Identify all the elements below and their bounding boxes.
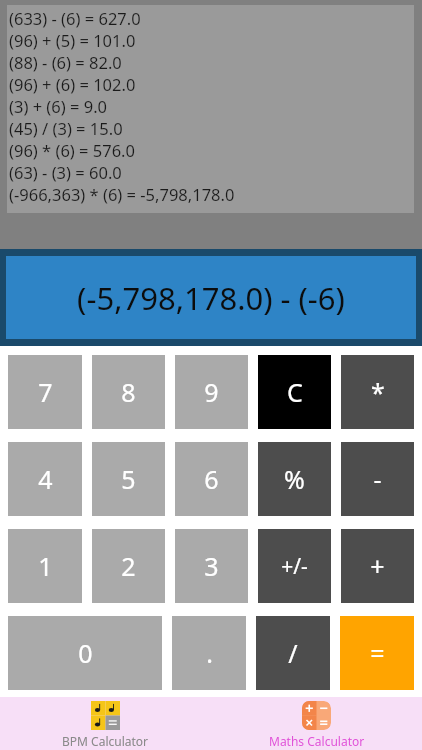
staticText: 6 <box>204 462 219 496</box>
staticText: (-5,798,178.0) - (-6) <box>77 277 345 319</box>
staticText: Maths Calculator <box>269 733 365 749</box>
staticText: 3 <box>204 549 219 583</box>
staticText: 2 <box>121 549 136 583</box>
button[interactable]: 8 <box>92 355 165 429</box>
staticText: = <box>370 636 385 670</box>
staticText: 5 <box>121 462 136 496</box>
staticText: 8 <box>121 375 136 409</box>
button[interactable]: - <box>341 442 414 516</box>
staticText: (96) + (5) = 101.0 <box>9 29 136 51</box>
button[interactable]: 2 <box>92 529 165 603</box>
staticText: (63) - (3) = 60.0 <box>9 161 122 183</box>
button[interactable]: 3 <box>175 529 248 603</box>
staticText: - <box>373 462 382 496</box>
staticText: (88) - (6) = 82.0 <box>9 51 122 73</box>
staticText: + <box>370 549 385 583</box>
button[interactable]: . <box>172 616 246 690</box>
staticText: % <box>284 462 305 496</box>
staticText: * <box>371 375 385 409</box>
button[interactable]: / <box>256 616 330 690</box>
staticText: (-966,363) * (6) = -5,798,178.0 <box>9 183 235 205</box>
staticText: (45) / (3) = 15.0 <box>9 117 123 139</box>
button[interactable]: 1 <box>8 529 82 603</box>
staticText: 7 <box>38 375 53 409</box>
button[interactable]: +/- <box>258 529 331 603</box>
button[interactable]: 9 <box>175 355 248 429</box>
button[interactable]: 5 <box>92 442 165 516</box>
staticText: . <box>206 636 213 670</box>
staticText: (96) * (6) = 576.0 <box>9 139 135 161</box>
staticText: C <box>287 375 303 409</box>
button[interactable]: + <box>341 529 414 603</box>
staticText: 1 <box>38 549 53 583</box>
button[interactable]: C <box>258 355 331 429</box>
button[interactable]: * <box>341 355 414 429</box>
staticText: +/- <box>281 552 308 581</box>
button[interactable]: 6 <box>175 442 248 516</box>
button[interactable]: = <box>340 616 414 690</box>
staticText: (633) - (6) = 627.0 <box>9 7 141 29</box>
staticText: / <box>288 636 298 670</box>
button[interactable]: 7 <box>8 355 82 429</box>
other: Maths Calculator <box>302 701 331 730</box>
staticText: BPM Calculator <box>62 733 149 749</box>
staticText: 4 <box>38 462 53 496</box>
button[interactable]: 0 <box>8 616 162 690</box>
button[interactable]: BPM Calculator <box>0 697 211 750</box>
staticText: 0 <box>78 636 93 670</box>
staticText: 9 <box>204 375 219 409</box>
staticText: (96) + (6) = 102.0 <box>9 73 136 95</box>
button[interactable]: Maths Calculator <box>211 697 422 750</box>
button[interactable]: % <box>258 442 331 516</box>
button[interactable]: 4 <box>8 442 82 516</box>
other: BPM Calculator <box>91 701 120 730</box>
staticText: (3) + (6) = 9.0 <box>9 95 108 117</box>
